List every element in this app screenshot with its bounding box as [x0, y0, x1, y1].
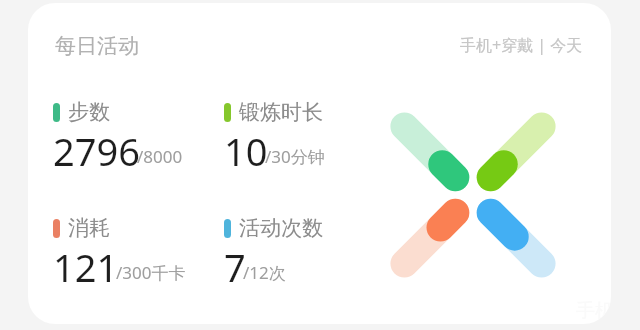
staticText: /12次 — [243, 261, 286, 284]
staticText: /8000 — [137, 145, 183, 168]
button[interactable]: 活动次数 — [224, 215, 323, 293]
button[interactable]: 每日活动 — [55, 33, 139, 59]
staticText: 10 — [224, 125, 268, 177]
button[interactable]: 手机在线 — [28, 3, 611, 324]
button[interactable]: 步数 — [53, 99, 186, 177]
staticText: 手机在线 — [576, 299, 611, 323]
button[interactable]: 手机+穿戴 | 今天 — [460, 34, 583, 56]
button[interactable]: 每日活动进度 — [363, 85, 583, 305]
button[interactable]: 消耗 — [53, 215, 189, 293]
staticText: 锻炼时长 — [239, 99, 323, 125]
staticText: /300千卡 — [116, 261, 186, 284]
staticText: 121 — [53, 241, 119, 293]
staticText: 7 — [224, 241, 246, 293]
button[interactable]: 锻炼时长 — [224, 99, 328, 177]
staticText: 消耗 — [68, 215, 110, 241]
staticText: 活动次数 — [239, 215, 323, 241]
staticText: 步数 — [68, 99, 110, 125]
staticText: 手机+穿戴 | 今天 — [460, 34, 583, 56]
staticText: 2796 — [53, 125, 140, 177]
staticText: /30分钟 — [265, 145, 325, 168]
